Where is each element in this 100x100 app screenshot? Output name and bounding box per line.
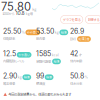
button[interactable]: 99 bbox=[36, 72, 53, 86]
button[interactable]: 12.5 bbox=[3, 49, 31, 63]
staticText: BMI bbox=[70, 37, 76, 41]
button[interactable]: 25.50 bbox=[3, 27, 40, 41]
staticText: 標準 bbox=[61, 30, 67, 35]
staticText: やや高い bbox=[27, 30, 39, 35]
staticText: 基礎代謝量 bbox=[36, 59, 51, 64]
button[interactable]: グラフを見る bbox=[60, 15, 83, 23]
staticText: 標準 bbox=[46, 75, 52, 79]
staticText: kg bbox=[32, 6, 36, 12]
staticText: kcal bbox=[52, 52, 59, 57]
button[interactable]: 1585 bbox=[36, 49, 61, 64]
staticText: 推定骨量 bbox=[3, 81, 15, 86]
staticText: kg増 bbox=[26, 11, 33, 16]
staticText: 10.8 bbox=[16, 10, 25, 16]
staticText: 標準 bbox=[53, 59, 59, 64]
button[interactable]: 50.8 bbox=[70, 72, 88, 86]
staticText: 75.80 bbox=[1, 0, 31, 14]
button[interactable]: 26.9 bbox=[70, 27, 91, 42]
staticText: 筋肉量 bbox=[36, 36, 45, 41]
staticText: 25.50 bbox=[3, 27, 21, 35]
staticText: 記録する bbox=[87, 17, 99, 22]
button[interactable]: 42 bbox=[70, 49, 82, 63]
staticText: 42 bbox=[70, 49, 78, 58]
staticText: % bbox=[85, 75, 88, 79]
staticText: 12.5 bbox=[3, 49, 16, 58]
button[interactable]: 2.90 bbox=[3, 72, 31, 86]
staticText: やや高い bbox=[18, 53, 30, 57]
staticText: 体水分率 bbox=[70, 81, 82, 86]
staticText: 1585 bbox=[36, 49, 51, 58]
staticText: 2.90 bbox=[3, 72, 17, 80]
staticText: 26.9 bbox=[70, 27, 84, 35]
staticText: 前回から bbox=[2, 11, 14, 16]
staticText: % bbox=[22, 30, 25, 35]
button[interactable]: 記録する bbox=[85, 15, 100, 23]
staticText: 50.8 bbox=[70, 72, 84, 80]
staticText: 才 bbox=[79, 52, 82, 57]
staticText: 99 bbox=[36, 72, 44, 80]
staticText: グラフを見る bbox=[63, 17, 81, 22]
staticText: 体内年齢 bbox=[70, 59, 82, 63]
staticText: 53.50 bbox=[36, 27, 54, 35]
staticText: kg bbox=[55, 30, 59, 35]
staticText: 体脂肪率 bbox=[3, 36, 15, 41]
staticText: 内臓脂肪レベル bbox=[3, 59, 24, 63]
staticText: 標準 bbox=[24, 75, 30, 79]
staticText: kg bbox=[18, 75, 22, 79]
button[interactable]: 53.50 bbox=[36, 27, 68, 41]
staticText: 肥満1度 bbox=[78, 37, 89, 41]
staticText: 肥満度 bbox=[36, 81, 45, 86]
staticText: 今回の測定結果から、体調の変化がみられます bbox=[8, 92, 71, 97]
